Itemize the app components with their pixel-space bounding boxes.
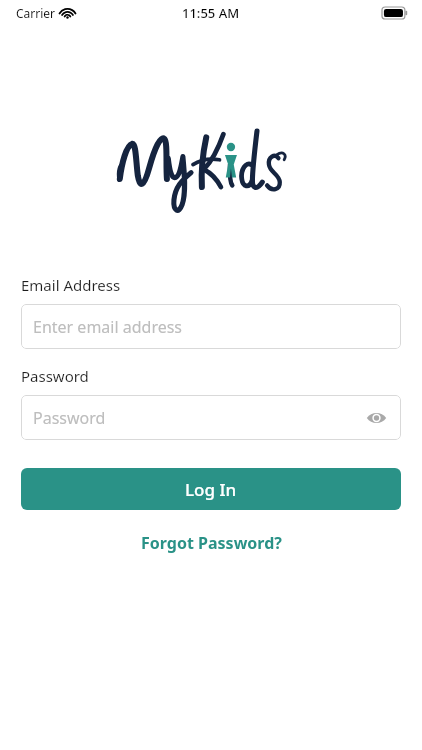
staticText: 11:55 AM [182,4,240,22]
staticText: Log In [185,478,237,501]
button[interactable]: Forgot Password? [133,528,290,558]
button[interactable]: Log In [21,468,401,510]
button[interactable]: Enter email address [21,304,401,349]
button[interactable]: Show password [363,405,389,431]
staticText: Carrier [16,5,56,21]
staticText: Email Address [21,275,121,295]
button[interactable]: Password [21,395,401,440]
staticText: Password [21,366,89,386]
staticText: Enter email address [33,316,183,338]
staticText: Password [33,407,106,429]
